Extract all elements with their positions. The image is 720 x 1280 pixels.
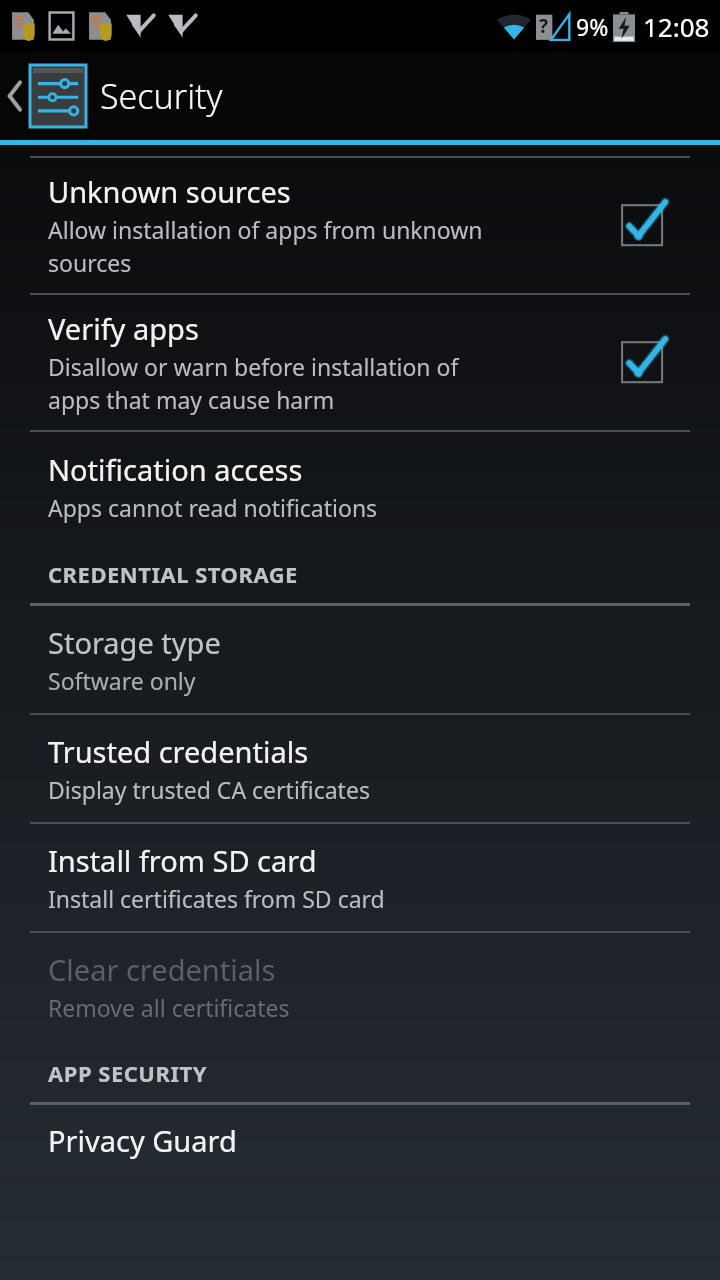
staticText: Notification access: [48, 450, 303, 489]
staticText: Privacy Guard: [48, 1121, 237, 1160]
button[interactable]: Unknown sources: [0, 158, 720, 293]
staticText: Security: [100, 73, 223, 119]
staticText: Remove all certificates: [48, 992, 290, 1023]
button[interactable]: Navigate up: [0, 52, 720, 140]
button[interactable]: Verify apps: [0, 295, 720, 430]
button[interactable]: Notification access: [0, 432, 720, 541]
staticText: Install from SD card: [48, 841, 317, 880]
button[interactable]: Clear credentials: [0, 933, 720, 1040]
staticText: ?: [539, 13, 549, 39]
staticText: Trusted credentials: [48, 732, 309, 771]
staticText: APP SECURITY: [48, 1058, 207, 1088]
staticText: 9%: [576, 11, 609, 42]
staticText: Software only: [48, 665, 196, 696]
staticText: Verify apps: [48, 309, 199, 348]
staticText: Storage type: [48, 623, 221, 662]
button[interactable]: Storage type: [0, 606, 720, 713]
staticText: Install certificates from SD card: [48, 883, 385, 914]
staticText: Apps cannot read notifications: [48, 492, 378, 523]
staticText: Allow installation of apps from unknown …: [48, 214, 483, 279]
button[interactable]: Install from SD card: [0, 824, 720, 931]
staticText: Unknown sources: [48, 172, 291, 211]
button[interactable]: Trusted credentials: [0, 715, 720, 822]
staticText: Clear credentials: [48, 950, 276, 989]
button[interactable]: Privacy Guard: [0, 1105, 720, 1160]
staticText: Display trusted CA certificates: [48, 774, 370, 805]
staticText: Disallow or warn before installation of …: [48, 351, 459, 416]
staticText: CREDENTIAL STORAGE: [48, 559, 298, 589]
staticText: 12:08: [643, 9, 710, 44]
